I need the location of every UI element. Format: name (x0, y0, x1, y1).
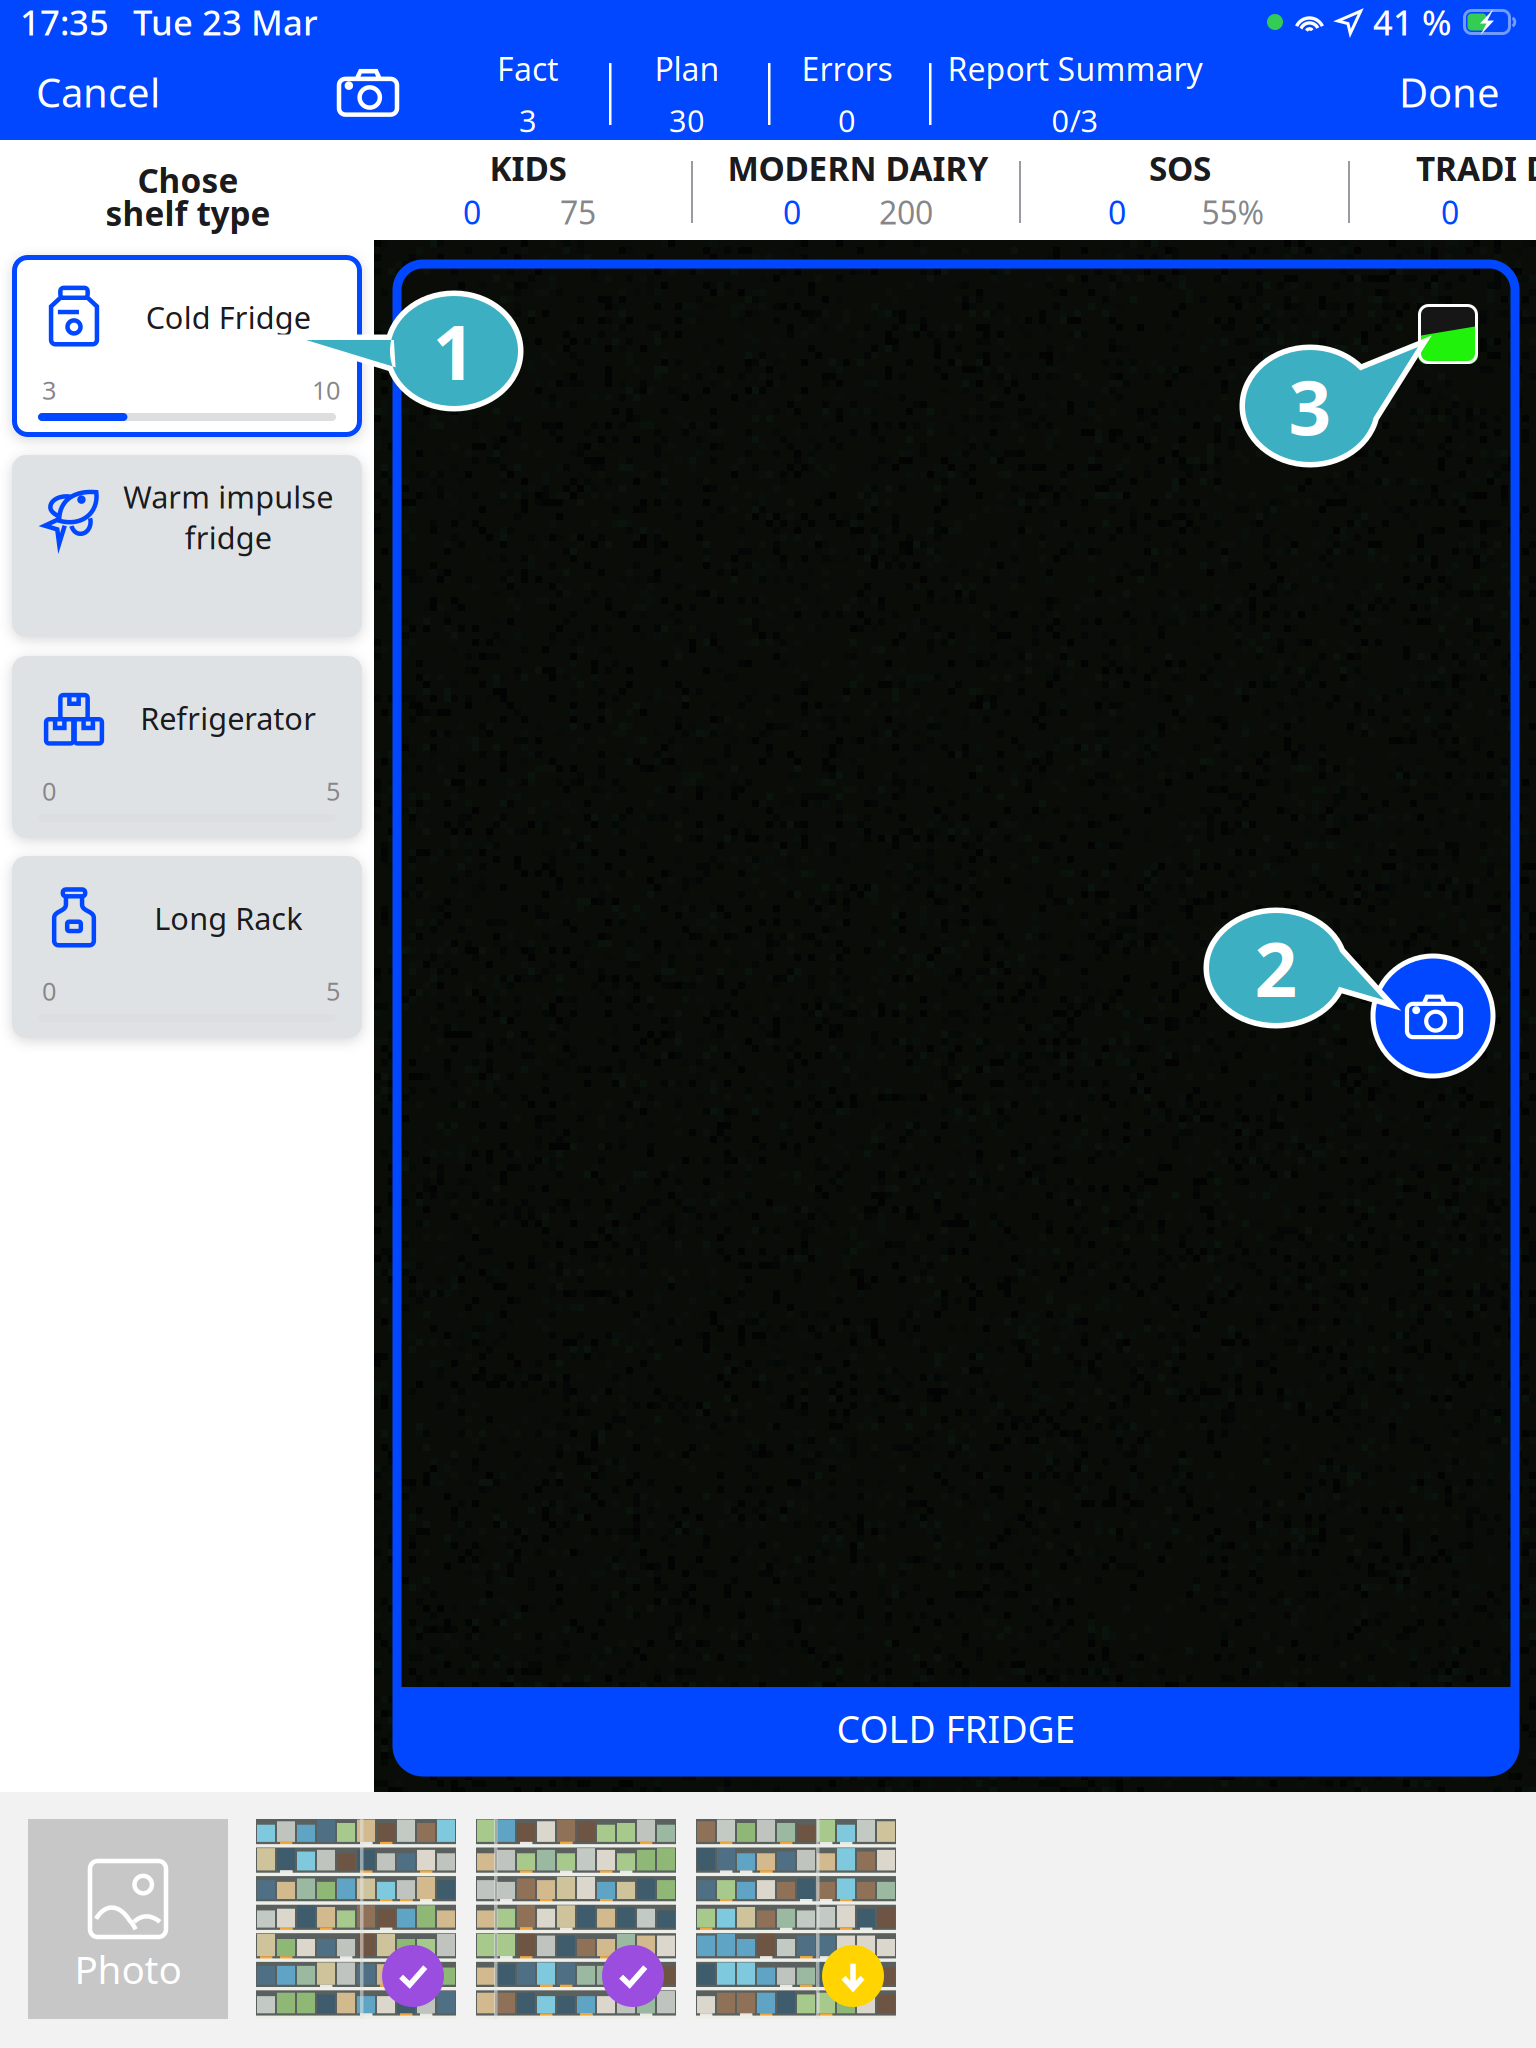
staticText: 0 (1108, 191, 1126, 233)
staticText: Long Rack (154, 898, 302, 938)
staticText: 17:35 (20, 0, 109, 45)
staticText: COLD FRIDGE (836, 1704, 1075, 1753)
button[interactable]: Shelf photo 1 (256, 1819, 456, 2019)
staticText: 0 (463, 191, 481, 233)
staticText: Cancel (36, 65, 160, 118)
button[interactable]: Shelf photo 3 (696, 1819, 896, 2019)
button[interactable]: Cancel (36, 52, 236, 132)
button[interactable]: Long Rack (12, 856, 362, 1038)
staticText: Errors (801, 47, 892, 90)
staticText: Tue 23 Mar (133, 0, 318, 45)
button[interactable]: Errors (772, 50, 922, 138)
button[interactable]: Fact (453, 50, 603, 138)
staticText: 0 (42, 974, 56, 1008)
button[interactable]: Plan (612, 50, 762, 138)
staticText: Refrigerator (140, 698, 316, 738)
staticText: Photo (74, 1943, 181, 1995)
staticText: Report Summary (947, 47, 1202, 90)
staticText: 41 % (1373, 0, 1452, 45)
button[interactable]: Take photo (1369, 952, 1497, 1080)
staticText: TRADI D (1416, 146, 1536, 190)
staticText: Plan (654, 47, 719, 90)
button[interactable]: Shelf photo 2 (476, 1819, 676, 2019)
staticText: 5 (326, 774, 340, 808)
staticText: 0 (838, 100, 856, 141)
staticText: 0 (42, 774, 56, 808)
staticText: 1 (432, 301, 475, 401)
staticText: SOS (1149, 146, 1211, 190)
staticText: 200 (879, 191, 933, 233)
staticText: 3 (42, 373, 56, 407)
staticText: 0 (783, 191, 801, 233)
staticText: Done (1399, 65, 1500, 118)
staticText: 0 (1441, 191, 1459, 233)
staticText: MODERN DAIRY (727, 146, 988, 190)
button[interactable]: Camera (318, 52, 418, 132)
staticText: shelf type (105, 191, 270, 235)
staticText: 3 (1288, 356, 1331, 456)
staticText: 10 (312, 373, 340, 407)
staticText: Warm impulse fridge (123, 476, 333, 558)
staticText: Cold Fridge (145, 297, 310, 337)
button[interactable]: Cold Fridge (12, 255, 362, 437)
staticText: 75 (560, 191, 596, 233)
button[interactable]: Refrigerator (12, 656, 362, 838)
button[interactable]: Warm impulse fridge (12, 455, 362, 637)
staticText: 3 (519, 100, 537, 141)
staticText: 55% (1201, 191, 1264, 233)
button[interactable]: Done (1320, 52, 1500, 132)
staticText: Fact (497, 47, 559, 90)
staticText: 5 (326, 974, 340, 1008)
button[interactable]: Report Summary (915, 50, 1235, 138)
button[interactable]: Photo (28, 1819, 228, 2019)
staticText: Chose (137, 158, 238, 202)
staticText: KIDS (489, 146, 566, 190)
staticText: 0/3 (1051, 100, 1098, 141)
button[interactable]: Shelf colour legend (1418, 304, 1478, 364)
staticText: 2 (1254, 918, 1297, 1018)
staticText: 30 (669, 100, 705, 141)
